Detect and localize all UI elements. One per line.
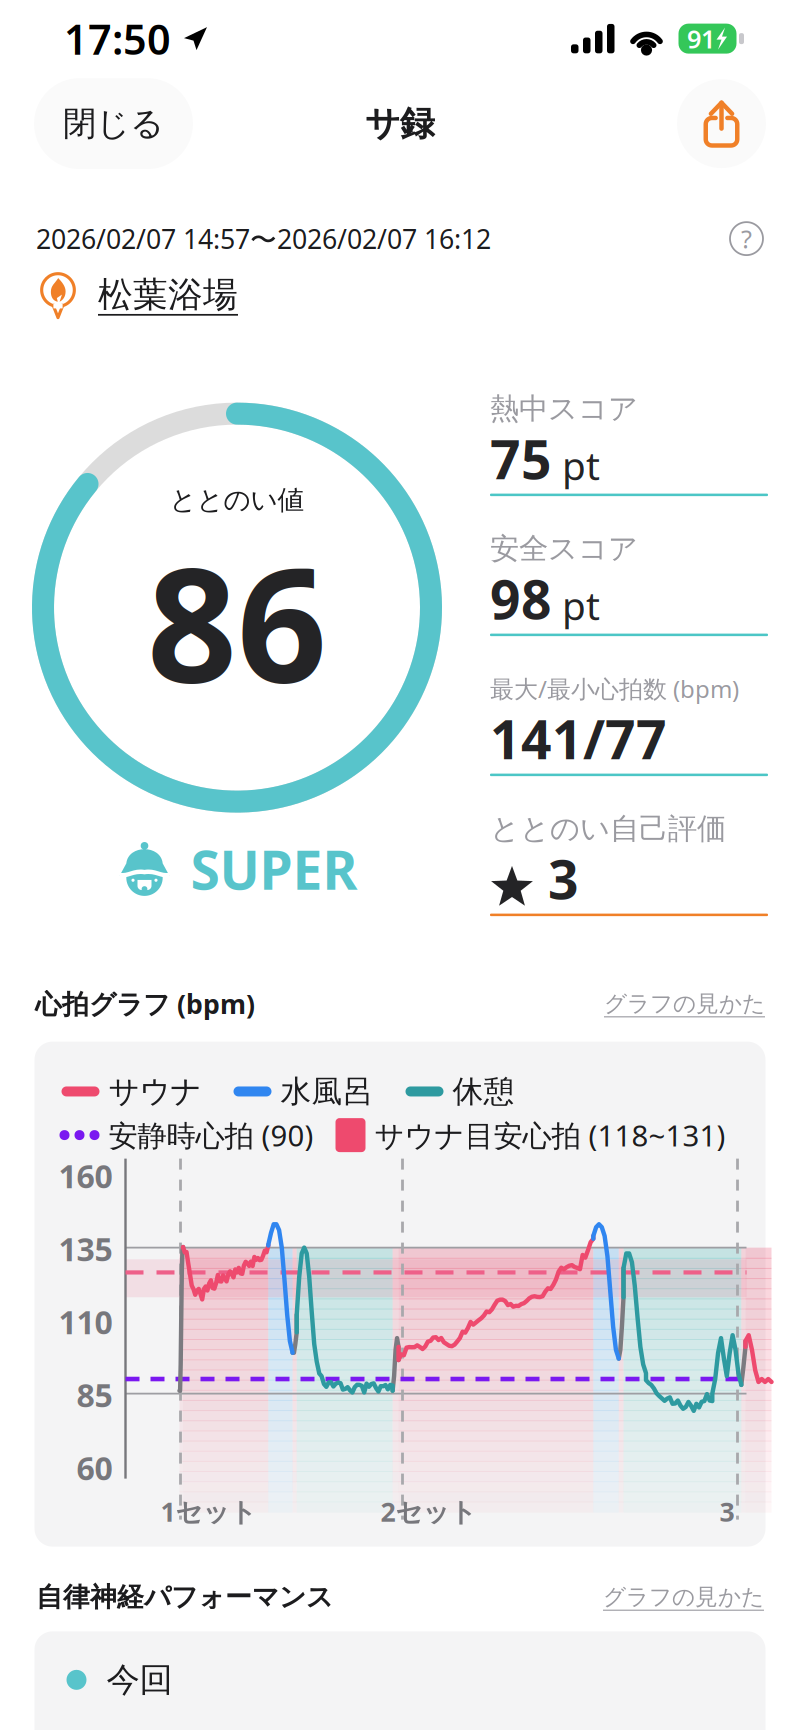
button[interactable]: グラフの見かた xyxy=(604,990,765,1017)
button[interactable]: グラフの見かた xyxy=(603,1583,764,1611)
button[interactable]: Help xyxy=(730,222,763,255)
staticText: 86 xyxy=(147,516,327,725)
staticText: 98 xyxy=(490,563,552,634)
staticText: 110 xyxy=(58,1301,112,1343)
staticText: 熱中スコア xyxy=(490,391,638,427)
button[interactable]: 松葉浴場 xyxy=(0,259,800,321)
staticText: 松葉浴場 xyxy=(98,273,238,316)
staticText: ととのい値 xyxy=(169,484,304,517)
staticText: SUPER xyxy=(190,834,357,904)
staticText: 休憩 xyxy=(443,1073,514,1110)
staticText: サウナ xyxy=(99,1073,201,1110)
staticText: 60 xyxy=(76,1447,112,1489)
staticText: ? xyxy=(741,222,752,255)
staticText: サ録 xyxy=(365,102,435,145)
staticText: ととのい自己評価 xyxy=(490,811,726,847)
staticText: 75 xyxy=(490,423,552,494)
staticText: 135 xyxy=(58,1228,112,1270)
button[interactable]: Share xyxy=(677,79,766,168)
staticText: pt xyxy=(552,440,600,491)
staticText: 3 xyxy=(719,1494,734,1529)
staticText: サウナ目安心拍 (118~131) xyxy=(365,1116,725,1155)
staticText: 心拍グラフ (bpm) xyxy=(35,986,255,1021)
staticText: 安全スコア xyxy=(490,531,638,567)
staticText: pt xyxy=(552,580,600,631)
staticText: 2セット xyxy=(380,1494,476,1529)
staticText: 91 xyxy=(687,22,715,55)
staticText: 最大/最小心拍数 (bpm) xyxy=(490,673,739,705)
staticText: 3 xyxy=(534,843,579,914)
staticText: 水風呂 xyxy=(271,1073,373,1110)
staticText: 1セット xyxy=(160,1494,256,1529)
staticText: グラフの見かた xyxy=(604,990,765,1017)
staticText: 85 xyxy=(76,1374,112,1416)
staticText: 自律神経パフォーマンス xyxy=(36,1581,333,1613)
staticText: 17:50 xyxy=(64,11,171,66)
staticText: 今回 xyxy=(86,1659,172,1700)
staticText: 安静時心拍 (90) xyxy=(99,1116,313,1155)
staticText: 閉じる xyxy=(63,103,164,144)
button[interactable]: 閉じる xyxy=(34,78,193,169)
staticText: 160 xyxy=(58,1155,112,1197)
staticText: グラフの見かた xyxy=(603,1583,764,1611)
staticText: 2026/02/07 14:57〜2026/02/07 16:12 xyxy=(36,221,491,256)
staticText: 141/77 xyxy=(490,703,667,774)
